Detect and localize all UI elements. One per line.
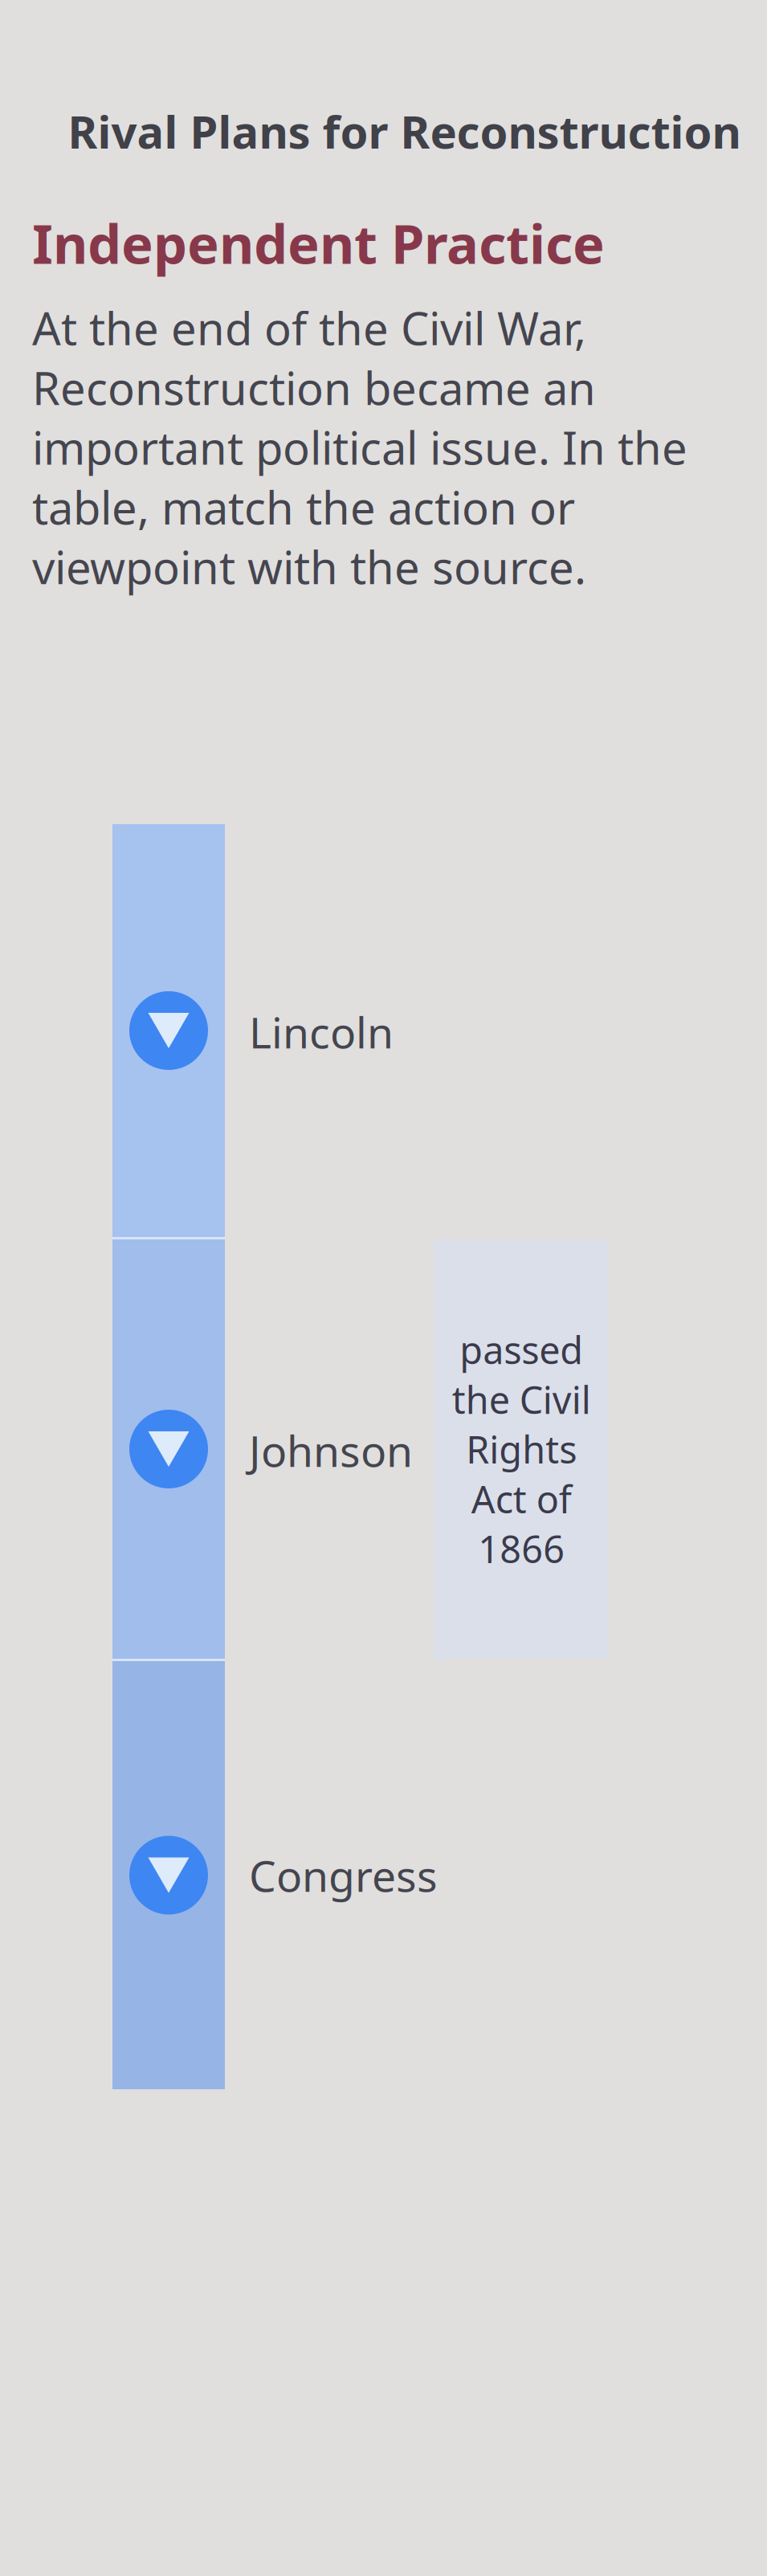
button[interactable]: Lincoln answer slot	[112, 824, 225, 1237]
staticText: Johnson	[249, 1422, 413, 1479]
staticText: Independent Practice	[32, 208, 605, 279]
staticText: Lincoln	[249, 1003, 394, 1060]
staticText: At the end of the Civil War, Reconstruct…	[32, 298, 687, 597]
staticText: Rival Plans for Reconstruction	[68, 101, 741, 161]
staticText: Congress	[249, 1847, 438, 1904]
staticText: passed the Civil Rights Act of 1866	[452, 1325, 591, 1574]
button[interactable]: Congress answer slot	[112, 1661, 225, 2089]
button[interactable]: Johnson answer slot	[112, 1239, 225, 1659]
button[interactable]: passed the Civil Rights Act of 1866	[434, 1239, 609, 1659]
